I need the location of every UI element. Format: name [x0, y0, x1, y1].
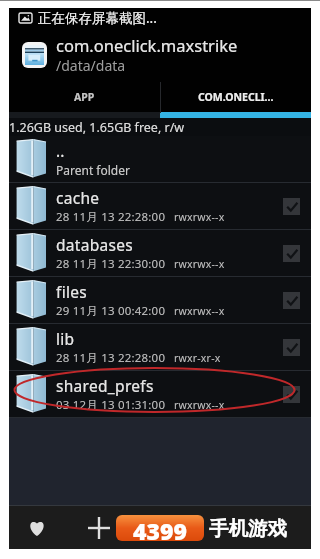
button[interactable]: APP: [9, 81, 160, 118]
staticText: APP: [74, 90, 95, 104]
staticText: cache: [56, 187, 100, 208]
staticText: rwxrwx--x: [174, 257, 225, 271]
staticText: 1.26GB used, 1.65GB free, r/w: [9, 119, 185, 136]
staticText: databases: [56, 234, 134, 255]
staticText: 4399: [133, 515, 187, 541]
button[interactable]: ..: [9, 136, 311, 182]
button[interactable]: Select: [283, 245, 300, 262]
staticText: 28 11月 13 22:28:00: [56, 350, 166, 366]
button[interactable]: Select: [283, 386, 300, 403]
staticText: shared_prefs: [56, 375, 154, 396]
button[interactable]: lib: [9, 324, 311, 370]
staticText: lib: [56, 328, 75, 349]
button[interactable]: cache: [9, 183, 311, 229]
staticText: Parent folder: [56, 162, 130, 178]
staticText: ..: [56, 140, 65, 161]
staticText: 28 11月 13 22:28:00: [56, 209, 166, 225]
staticText: 03 12月 13 01:31:00: [56, 397, 166, 413]
staticText: 正在保存屏幕截图...: [38, 9, 157, 27]
staticText: COM.ONECLI...: [198, 90, 274, 104]
staticText: 28 11月 13 22:30:00: [56, 256, 166, 272]
staticText: rwxrwx--x: [174, 304, 225, 318]
button[interactable]: databases: [9, 230, 311, 276]
staticText: files: [56, 281, 87, 302]
button[interactable]: files: [9, 277, 311, 323]
button[interactable]: Select: [283, 292, 300, 309]
staticText: 29 11月 13 00:42:00: [56, 303, 166, 319]
button[interactable]: COM.ONECLI...: [160, 81, 311, 118]
button[interactable]: Select: [283, 339, 300, 356]
button[interactable]: shared_prefs: [9, 371, 311, 417]
staticText: rwxrwx--x: [174, 398, 225, 412]
button[interactable]: Add: [74, 506, 124, 549]
staticText: rwxr-xr-x: [174, 351, 221, 365]
staticText: 手机游戏: [209, 516, 287, 541]
staticText: com.oneclick.maxstrike: [56, 34, 238, 56]
staticText: rwxrwx--x: [174, 210, 225, 224]
button[interactable]: Favorites: [12, 506, 62, 549]
button[interactable]: Select: [283, 198, 300, 215]
staticText: /data/data: [56, 56, 126, 75]
